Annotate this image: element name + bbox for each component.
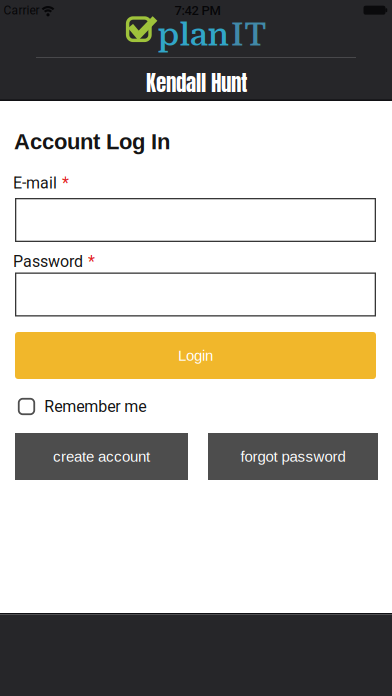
staticText: * — [62, 174, 69, 192]
staticText: create account — [53, 448, 150, 465]
staticText: Carrier — [3, 3, 39, 18]
staticText: IT — [231, 15, 267, 54]
staticText: Remember me — [44, 397, 146, 416]
staticText: Login — [178, 347, 213, 364]
staticText: forgot password — [240, 448, 345, 465]
button[interactable]: Login — [15, 332, 376, 379]
staticText: Account Log In — [14, 129, 170, 154]
staticText: plan — [157, 15, 229, 54]
staticText: * — [88, 252, 95, 271]
staticText: 7:42 PM — [174, 3, 220, 18]
button[interactable]: Remember me — [19, 397, 146, 416]
staticText: Password — [13, 252, 83, 271]
staticText: E-mail — [13, 174, 57, 192]
button[interactable]: create account — [15, 433, 188, 480]
staticText: Kendall Hunt — [146, 67, 247, 99]
button[interactable]: forgot password — [208, 433, 378, 480]
